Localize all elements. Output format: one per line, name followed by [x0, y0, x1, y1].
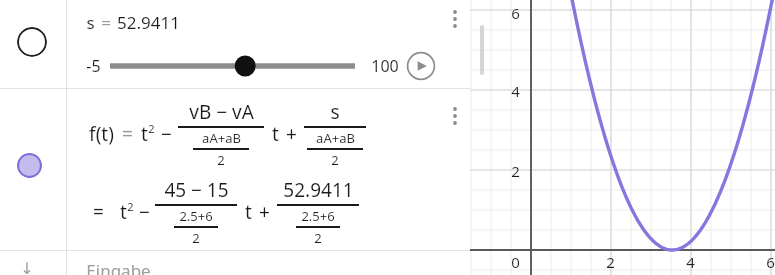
- staticText: 45 − 15: [164, 177, 229, 203]
- staticText: 2: [331, 151, 339, 169]
- staticText: +: [286, 121, 297, 147]
- staticText: Eingabe: [86, 259, 151, 275]
- staticText: t: [245, 199, 252, 225]
- staticText: 2: [127, 199, 134, 214]
- button[interactable]: Toggle visibility of s: [0, 0, 470, 88]
- staticText: 6: [511, 3, 520, 23]
- staticText: −: [161, 121, 172, 147]
- staticText: 4: [511, 81, 520, 101]
- staticText: vB − vA: [189, 99, 254, 125]
- button[interactable]: Play animation: [406, 51, 436, 81]
- staticText: aA+aB: [316, 129, 355, 147]
- staticText: 0: [511, 252, 520, 272]
- staticText: 4: [686, 252, 695, 272]
- staticText: −: [139, 199, 150, 225]
- staticText: aA+aB: [202, 129, 241, 147]
- staticText: =: [122, 121, 133, 147]
- button[interactable]: Toggle visibility of f: [17, 153, 42, 178]
- staticText: t: [141, 121, 148, 147]
- staticText: +: [259, 199, 270, 225]
- staticText: s: [330, 99, 340, 125]
- button[interactable]: More options: [444, 4, 466, 34]
- staticText: -5: [86, 55, 101, 77]
- staticText: 2: [217, 151, 225, 169]
- staticText: t: [120, 199, 127, 225]
- staticText: 2: [148, 121, 155, 136]
- staticText: =: [93, 199, 104, 225]
- staticText: s: [86, 11, 95, 34]
- staticText: f(t): [89, 121, 114, 147]
- staticText: 2.5+6: [179, 207, 213, 225]
- button[interactable]: ↓: [0, 251, 470, 275]
- staticText: 2.5+6: [301, 207, 335, 225]
- staticText: 52.9411: [117, 11, 180, 34]
- staticText: 2: [606, 252, 615, 272]
- button[interactable]: Toggle visibility of s: [17, 27, 47, 57]
- staticText: =: [101, 11, 111, 34]
- staticText: ↓: [20, 259, 34, 275]
- staticText: 100: [371, 55, 399, 77]
- staticText: 2: [192, 229, 200, 247]
- button[interactable]: More options: [444, 101, 466, 131]
- button[interactable]: Slider s: [110, 54, 355, 78]
- staticText: t: [272, 121, 279, 147]
- staticText: 52.9411: [283, 177, 354, 203]
- staticText: 6: [766, 252, 775, 272]
- button[interactable]: Toggle visibility of f: [0, 89, 470, 250]
- staticText: 2: [511, 161, 520, 181]
- staticText: 2: [314, 229, 322, 247]
